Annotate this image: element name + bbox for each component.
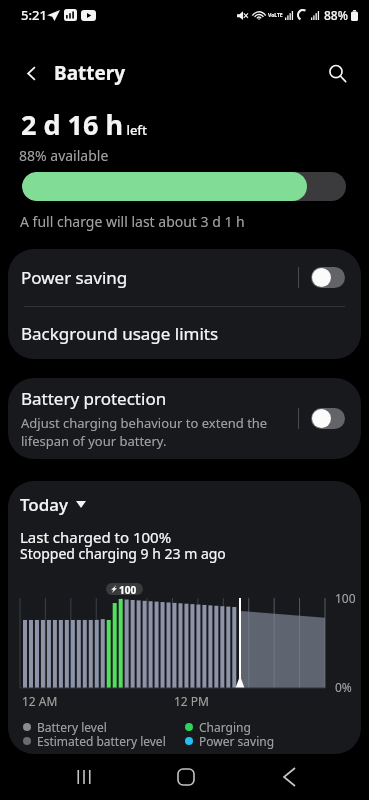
button[interactable]: Battery protection (8, 378, 361, 459)
staticText: Last charged to 100% (20, 527, 172, 547)
staticText: 0% (335, 679, 352, 695)
button[interactable]: Home (166, 757, 206, 797)
staticText: Background usage limits (21, 322, 219, 345)
button[interactable]: Power saving (8, 249, 361, 306)
button[interactable]: Back (16, 58, 46, 88)
staticText: Battery level (37, 719, 107, 735)
staticText: 5:21 (21, 6, 47, 24)
staticText: 12 AM (22, 693, 58, 709)
staticText: Stopped charging 9 h 23 m ago (20, 544, 226, 563)
staticText: Estimated battery level (37, 733, 166, 749)
button[interactable]: Toggle (311, 267, 345, 288)
button[interactable]: Toggle (311, 408, 345, 429)
staticText: 88% available (19, 146, 109, 165)
button[interactable]: Search (322, 58, 352, 88)
button[interactable]: Recent apps (64, 757, 104, 797)
staticText: 2 d 16 h left (21, 106, 147, 143)
button[interactable]: Back (269, 757, 309, 797)
staticText: 100 (335, 590, 356, 606)
staticText: VoLTE (268, 12, 283, 19)
button[interactable]: Today (20, 493, 86, 516)
staticText: Power saving (21, 266, 298, 289)
staticText: lifespan of your battery. (21, 432, 167, 450)
staticText: Battery protection (21, 387, 167, 410)
staticText: 88% (324, 7, 348, 23)
staticText: Adjust charging behaviour to extend the (21, 414, 268, 432)
button[interactable]: Background usage limits (8, 307, 361, 359)
staticText: Charging (199, 719, 251, 735)
staticText: A full charge will last about 3 d 1 h (20, 212, 245, 231)
staticText: Battery (54, 60, 126, 86)
staticText: Today (20, 493, 68, 516)
staticText: 12 PM (174, 693, 209, 709)
staticText: Power saving (199, 733, 275, 749)
staticText: 100 (119, 583, 137, 595)
